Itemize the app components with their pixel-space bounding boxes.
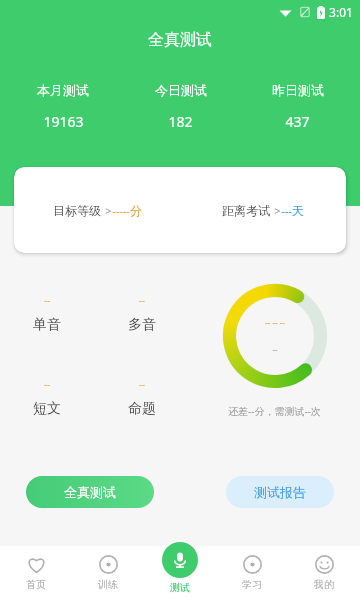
staticText: -- [44, 378, 50, 390]
staticText: 437 [285, 112, 310, 131]
staticText: 学习 [242, 578, 262, 591]
staticText: 训练 [98, 578, 118, 591]
button[interactable]: 本月测试 [4, 82, 122, 131]
button[interactable]: 测试报告 [226, 476, 334, 508]
staticText: 昨日测试 [272, 82, 324, 98]
staticText: 3:01 [329, 4, 353, 20]
button[interactable]: 目标等级 [14, 167, 180, 253]
staticText: -- [139, 378, 145, 390]
staticText: 我的 [314, 578, 334, 591]
staticText: 距离考试 [222, 203, 270, 218]
staticText: 目标等级 [53, 203, 101, 218]
staticText: 182 [168, 112, 193, 131]
staticText: 测试 [170, 581, 190, 594]
staticText: > [274, 203, 281, 218]
button[interactable]: 我的 [288, 546, 360, 600]
button[interactable]: -- [94, 272, 189, 356]
staticText: -- -- -- [265, 317, 285, 328]
staticText: 还差--分，需测试--次 [228, 404, 321, 418]
staticText: -- [44, 294, 50, 306]
button[interactable]: 首页 [0, 546, 72, 600]
staticText: 全真测试 [148, 30, 212, 50]
staticText: 首页 [26, 578, 46, 591]
button[interactable]: -- [94, 356, 189, 440]
staticText: 19163 [43, 112, 84, 131]
button[interactable]: 全真测试 [26, 476, 154, 508]
staticText: > [105, 203, 112, 218]
staticText: ----- [112, 203, 130, 218]
staticText: -- [272, 344, 278, 355]
button[interactable]: 训练 [72, 546, 144, 600]
staticText: 单音 [33, 316, 61, 334]
button[interactable]: 今日测试 [122, 82, 239, 131]
staticText: 天 [292, 203, 304, 218]
staticText: 多音 [128, 316, 156, 334]
button[interactable]: 距离考试 [180, 167, 346, 253]
button[interactable]: -- [0, 272, 94, 356]
staticText: --- [281, 203, 292, 218]
staticText: -- [139, 294, 145, 306]
button[interactable]: 昨日测试 [239, 82, 356, 131]
button[interactable]: 测试 录音 [160, 540, 200, 600]
staticText: 命题 [128, 400, 156, 418]
staticText: 本月测试 [37, 82, 89, 98]
staticText: 全真测试 [64, 484, 116, 500]
staticText: 测试报告 [254, 484, 306, 500]
staticText: 短文 [33, 400, 61, 418]
button[interactable]: -- [0, 356, 94, 440]
staticText: 分 [130, 203, 142, 218]
staticText: 今日测试 [155, 82, 207, 98]
button[interactable]: 学习 [216, 546, 288, 600]
